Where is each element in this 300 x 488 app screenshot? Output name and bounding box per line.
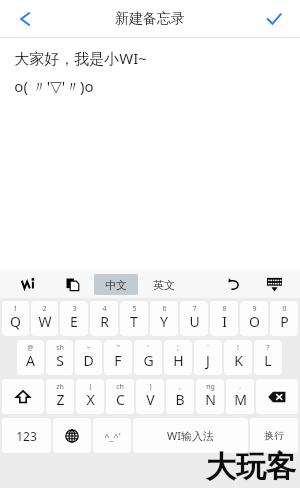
button[interactable]: ch (106, 379, 134, 414)
staticText: W (38, 312, 52, 331)
staticText: S (56, 351, 64, 370)
button[interactable]: 7 (180, 301, 208, 336)
button[interactable]: WI input method (6, 271, 50, 297)
staticText: 4 (102, 304, 107, 314)
staticText: 7 (192, 304, 197, 314)
staticText: 9 (252, 304, 257, 314)
staticText: Y (160, 312, 168, 331)
staticText: N (205, 390, 216, 409)
staticText: 5 (132, 304, 137, 314)
staticText: 新建备忘录 (115, 10, 185, 28)
staticText: ^_^' (104, 430, 121, 442)
staticText: H (173, 351, 184, 370)
staticText: WI输入法 (167, 428, 214, 443)
button[interactable]: ) (136, 379, 164, 414)
staticText: U (189, 312, 200, 331)
button[interactable]: Language (53, 418, 91, 453)
staticText: Q (10, 312, 21, 331)
button[interactable]: 中文 (94, 274, 138, 295)
staticText: M (234, 390, 247, 409)
button[interactable]: 1 (2, 301, 29, 336)
button[interactable]: ! (224, 340, 252, 375)
button[interactable]: zh (46, 379, 74, 414)
button[interactable]: . (226, 379, 254, 414)
staticText: B (175, 390, 185, 409)
button[interactable]: Hide keyboard (254, 271, 294, 297)
staticText: ) (149, 382, 152, 392)
button[interactable]: ng (196, 379, 224, 414)
staticText: R (100, 312, 109, 331)
staticText: ? (266, 343, 270, 353)
staticText: ` (207, 343, 209, 353)
button[interactable]: 9 (240, 301, 268, 336)
button[interactable]: @ (17, 340, 44, 375)
staticText: 大玩客 (206, 448, 296, 486)
staticText: 2 (42, 304, 47, 314)
button[interactable]: 4 (90, 301, 118, 336)
staticText: 中文 (105, 278, 127, 292)
button[interactable]: 5 (120, 301, 148, 336)
staticText: 1 (13, 304, 18, 314)
staticText: zh (56, 382, 64, 392)
staticText: A (26, 351, 35, 370)
button[interactable]: 6 (150, 301, 178, 336)
staticText: 8 (222, 304, 227, 314)
staticText: E (70, 312, 78, 331)
button[interactable]: Shift (2, 379, 44, 414)
staticText: O (249, 312, 260, 331)
staticText: C (116, 390, 125, 409)
button[interactable]: 3 (60, 301, 88, 336)
button[interactable]: 英文 (142, 274, 186, 295)
staticText: o( 〃'▽'〃)o (14, 76, 94, 96)
staticText: @ (27, 343, 34, 353)
staticText: T (130, 312, 138, 331)
staticText: ch (116, 382, 124, 392)
button[interactable]: ( (76, 379, 104, 414)
button[interactable]: 换行 (250, 418, 298, 453)
staticText: ! (237, 343, 239, 353)
button[interactable]: ` (194, 340, 222, 375)
button[interactable]: 123 (2, 418, 51, 453)
staticText: , (179, 382, 181, 392)
staticText: P (280, 312, 289, 331)
staticText: ( (89, 382, 92, 392)
staticText: ' (147, 343, 149, 353)
staticText: X (86, 390, 95, 409)
staticText: . (239, 382, 241, 392)
button[interactable]: ? (254, 340, 282, 375)
button[interactable]: ; (164, 340, 192, 375)
button[interactable]: , (166, 379, 194, 414)
button[interactable]: sh (46, 340, 73, 375)
staticText: L (264, 351, 272, 370)
staticText: F (114, 351, 122, 370)
staticText: K (234, 351, 243, 370)
button[interactable]: ' (134, 340, 162, 375)
button[interactable]: 8 (210, 301, 238, 336)
button[interactable]: ^_^' (93, 418, 131, 453)
staticText: 英文 (153, 278, 175, 292)
staticText: 123 (16, 428, 37, 444)
button[interactable]: 0 (270, 301, 298, 336)
staticText: I (222, 312, 227, 331)
staticText: 6 (162, 304, 167, 314)
staticText: 大家好，我是小WI~ (14, 48, 147, 68)
staticText: D (83, 351, 94, 370)
staticText: sh (56, 343, 64, 353)
staticText: " (117, 343, 120, 353)
staticText: 0 (282, 304, 287, 314)
button[interactable]: Undo (214, 271, 254, 297)
button[interactable]: 2 (31, 301, 58, 336)
staticText: ; (177, 343, 179, 353)
button[interactable]: Back (6, 0, 46, 38)
staticText: ~ (86, 343, 91, 353)
staticText: Z (56, 390, 65, 409)
button[interactable]: Save (254, 0, 294, 38)
button[interactable]: ~ (75, 340, 102, 375)
button[interactable]: WI输入法 (133, 418, 248, 453)
button[interactable]: Clipboard (50, 271, 94, 297)
button[interactable]: " (104, 340, 132, 375)
staticText: G (143, 351, 154, 370)
staticText: 换行 (264, 429, 284, 442)
staticText: J (206, 351, 210, 370)
button[interactable]: Backspace (256, 379, 298, 414)
